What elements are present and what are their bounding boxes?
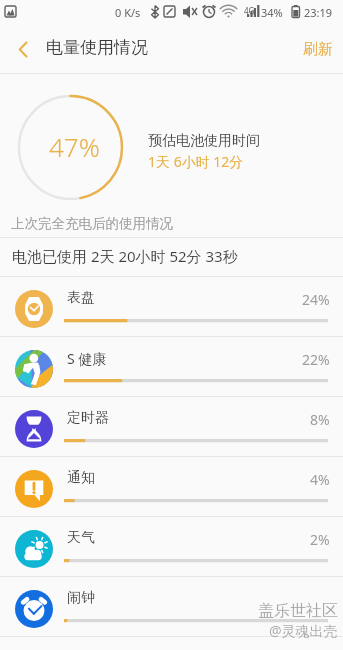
button[interactable]: S 健康 xyxy=(0,337,343,397)
staticText: 0 K/s xyxy=(115,5,141,20)
staticText: 通知 xyxy=(67,469,95,487)
staticText: 2% xyxy=(310,530,330,549)
staticText: @灵魂出壳 xyxy=(269,621,338,640)
button[interactable]: 定时器 xyxy=(0,397,343,457)
button[interactable]: 天气 xyxy=(0,517,343,577)
staticText: 34% xyxy=(261,5,283,20)
staticText: 表盘 xyxy=(67,289,95,307)
button[interactable]: 通知 xyxy=(0,457,343,517)
staticText: 47% xyxy=(49,129,100,164)
staticText: 4% xyxy=(310,470,330,489)
button[interactable]: 表盘 xyxy=(0,277,343,337)
staticText: 4G xyxy=(244,5,255,16)
staticText: S 健康 xyxy=(67,349,107,368)
staticText: 电量使用情况 xyxy=(46,37,148,58)
staticText: 盖乐世社区 xyxy=(258,601,338,621)
button[interactable]: Back xyxy=(4,26,42,70)
staticText: 电池已使用 2天 20小时 52分 33秒 xyxy=(12,246,238,266)
staticText: 24% xyxy=(302,290,330,309)
staticText: 天气 xyxy=(67,529,95,547)
staticText: 闹钟 xyxy=(67,589,95,607)
staticText: 上次完全充电后的使用情况 xyxy=(11,215,173,232)
staticText: 1天 6小时 12分 xyxy=(148,152,244,171)
staticText: 22% xyxy=(302,350,330,369)
button[interactable]: 刷新 xyxy=(289,24,343,72)
staticText: 23:19 xyxy=(304,5,333,20)
button[interactable]: 电池已使用 2天 20小时 52分 33秒 xyxy=(0,238,343,276)
button[interactable]: 闹钟 xyxy=(0,577,343,637)
staticText: 刷新 xyxy=(303,40,333,59)
staticText: 8% xyxy=(310,410,330,429)
staticText: 定时器 xyxy=(67,409,109,427)
staticText: 预估电池使用时间 xyxy=(148,132,260,150)
